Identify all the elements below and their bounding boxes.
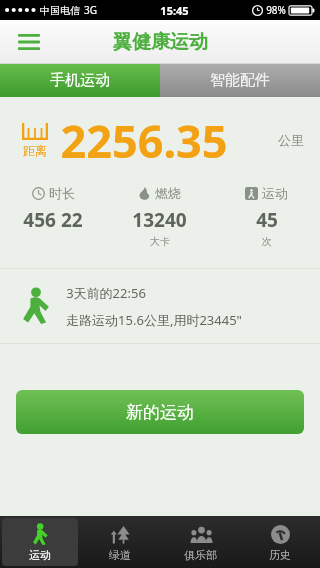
button[interactable]: 智能配件 <box>160 64 320 97</box>
button[interactable]: Menu <box>10 23 48 61</box>
button[interactable]: 绿道 <box>82 518 158 566</box>
staticText: 智能配件 <box>210 71 270 90</box>
staticText: 456 22 <box>23 207 83 233</box>
staticText: 13240 <box>132 207 187 233</box>
staticText: 新的运动 <box>126 402 194 423</box>
button[interactable]: 燃烧 <box>106 185 213 248</box>
button[interactable]: 历史 <box>242 518 318 566</box>
staticText: 中国电信 <box>40 4 80 17</box>
staticText: 3G <box>84 3 97 17</box>
staticText: 绿道 <box>109 548 131 562</box>
staticText: 运动 <box>262 185 288 201</box>
button[interactable]: 运动 <box>213 185 320 248</box>
staticText: 98% <box>266 3 286 17</box>
button[interactable]: 手机运动 <box>0 64 160 97</box>
staticText: 走路运动15.6公里,用时23445" <box>66 311 242 329</box>
button[interactable]: 3天前的22:56 <box>0 269 320 343</box>
staticText: 燃烧 <box>155 185 181 201</box>
staticText: 手机运动 <box>50 71 110 90</box>
staticText: 时长 <box>49 185 75 201</box>
staticText: 距离 <box>23 143 47 158</box>
staticText: 公里 <box>278 132 304 148</box>
staticText: 运动 <box>29 548 51 562</box>
staticText: 俱乐部 <box>184 548 217 562</box>
staticText: 次 <box>262 235 272 248</box>
staticText: 历史 <box>269 548 291 562</box>
staticText: 45 <box>256 207 278 233</box>
button[interactable]: 运动 <box>2 518 78 566</box>
staticText: 2256.35 <box>60 110 228 171</box>
staticText: 大卡 <box>150 235 170 248</box>
staticText: 3天前的22:56 <box>66 284 146 302</box>
staticText: 翼健康运动 <box>113 30 208 54</box>
button[interactable]: 时长 <box>0 185 106 248</box>
button[interactable]: 俱乐部 <box>162 518 238 566</box>
button[interactable]: 新的运动 <box>16 390 304 434</box>
staticText: 15:45 <box>160 3 189 18</box>
